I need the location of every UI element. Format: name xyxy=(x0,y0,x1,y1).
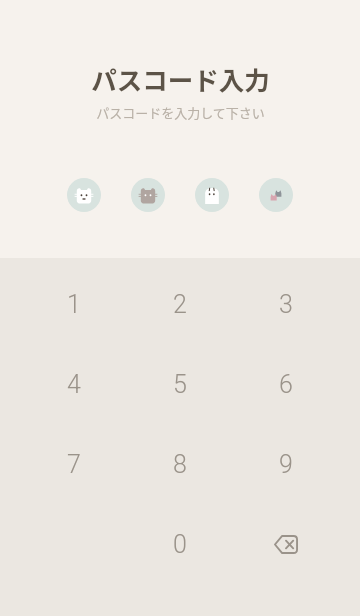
staticText: 5 xyxy=(173,370,187,399)
button[interactable]: Passcode digit xyxy=(67,178,101,212)
staticText: 8 xyxy=(173,450,187,479)
button[interactable]: 4 xyxy=(21,344,127,424)
staticText: 9 xyxy=(279,450,293,479)
staticText: 0 xyxy=(173,530,187,559)
button[interactable]: 5 xyxy=(127,344,233,424)
staticText: 4 xyxy=(67,370,81,399)
staticText: 3 xyxy=(279,290,293,319)
button[interactable]: Passcode digit xyxy=(131,178,165,212)
staticText: 7 xyxy=(67,450,81,479)
staticText: 2 xyxy=(173,290,187,319)
staticText: 6 xyxy=(279,370,293,399)
staticText: パスコード入力 xyxy=(91,60,270,97)
button[interactable]: 3 xyxy=(233,264,339,344)
button[interactable]: 2 xyxy=(127,264,233,344)
button[interactable]: 0 xyxy=(127,504,233,584)
button[interactable]: 6 xyxy=(233,344,339,424)
button[interactable]: 7 xyxy=(21,424,127,504)
button[interactable]: Passcode digit xyxy=(195,178,229,212)
button[interactable]: Backspace xyxy=(233,504,339,584)
button[interactable]: Passcode digit xyxy=(259,178,293,212)
button[interactable]: 9 xyxy=(233,424,339,504)
staticText: 1 xyxy=(67,290,81,319)
button[interactable]: 8 xyxy=(127,424,233,504)
button[interactable]: 1 xyxy=(21,264,127,344)
staticText: パスコードを入力して下さい xyxy=(96,103,265,122)
